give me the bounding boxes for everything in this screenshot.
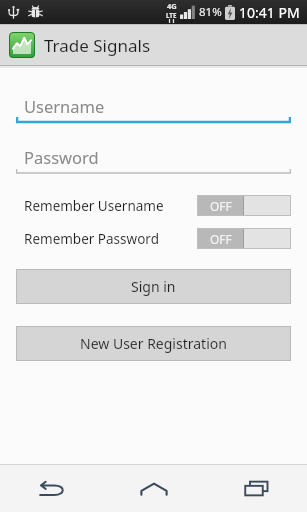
button[interactable]: Toggle, off: [197, 195, 291, 216]
staticText: 4G: [167, 1, 177, 11]
staticText: New User Registration: [80, 334, 227, 353]
button[interactable]: Password: [16, 143, 291, 178]
staticText: LTE: [166, 11, 177, 19]
staticText: Remember Username: [24, 197, 164, 215]
staticText: Remember Password: [24, 230, 159, 248]
staticText: Password: [24, 146, 99, 168]
staticText: 81%: [199, 4, 222, 20]
button[interactable]: Home: [103, 465, 205, 512]
staticText: OFF: [210, 198, 232, 214]
button[interactable]: Username: [16, 92, 291, 127]
button[interactable]: Back: [0, 465, 103, 512]
staticText: Trade Signals: [44, 34, 151, 57]
staticText: 10:41 PM: [239, 3, 300, 22]
button[interactable]: Sign in: [16, 269, 291, 304]
button[interactable]: Toggle, off: [197, 228, 291, 249]
staticText: Sign in: [131, 277, 176, 296]
staticText: OFF: [210, 231, 232, 247]
button[interactable]: New User Registration: [16, 326, 291, 361]
staticText: Username: [24, 95, 105, 117]
button[interactable]: Recent apps: [205, 465, 307, 512]
